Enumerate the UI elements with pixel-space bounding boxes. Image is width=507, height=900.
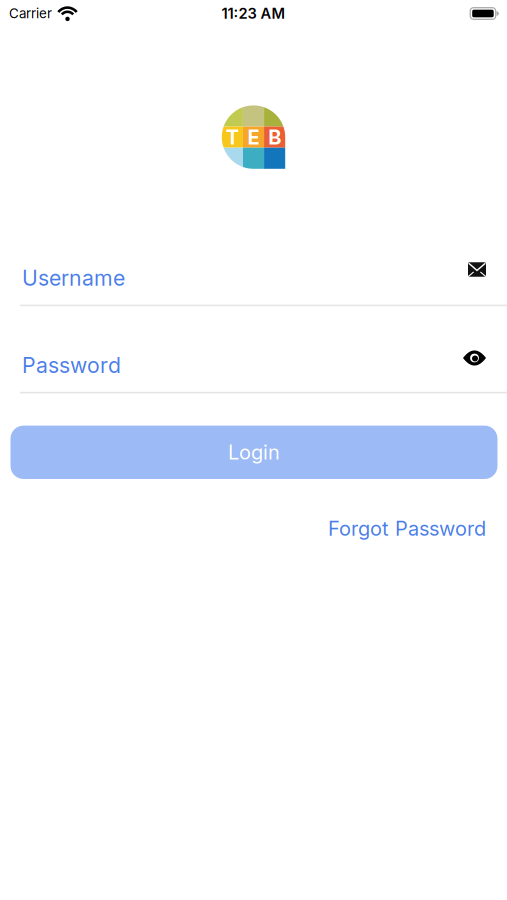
button[interactable]: Login: [10, 426, 497, 479]
staticText: Username: [22, 265, 125, 291]
staticText: 11:23 AM: [221, 5, 285, 22]
staticText: Carrier: [9, 6, 52, 21]
staticText: T: [226, 125, 239, 149]
button[interactable]: Username: [22, 265, 468, 291]
staticText: B: [268, 125, 281, 149]
staticText: Forgot Password: [328, 517, 486, 540]
staticText: Login: [228, 440, 280, 464]
staticText: E: [247, 125, 259, 149]
button[interactable]: Forgot Password: [328, 517, 486, 540]
staticText: Password: [22, 353, 121, 378]
button[interactable]: Email: [468, 262, 486, 277]
button[interactable]: Password: [22, 353, 463, 378]
button[interactable]: Show password: [463, 350, 486, 366]
